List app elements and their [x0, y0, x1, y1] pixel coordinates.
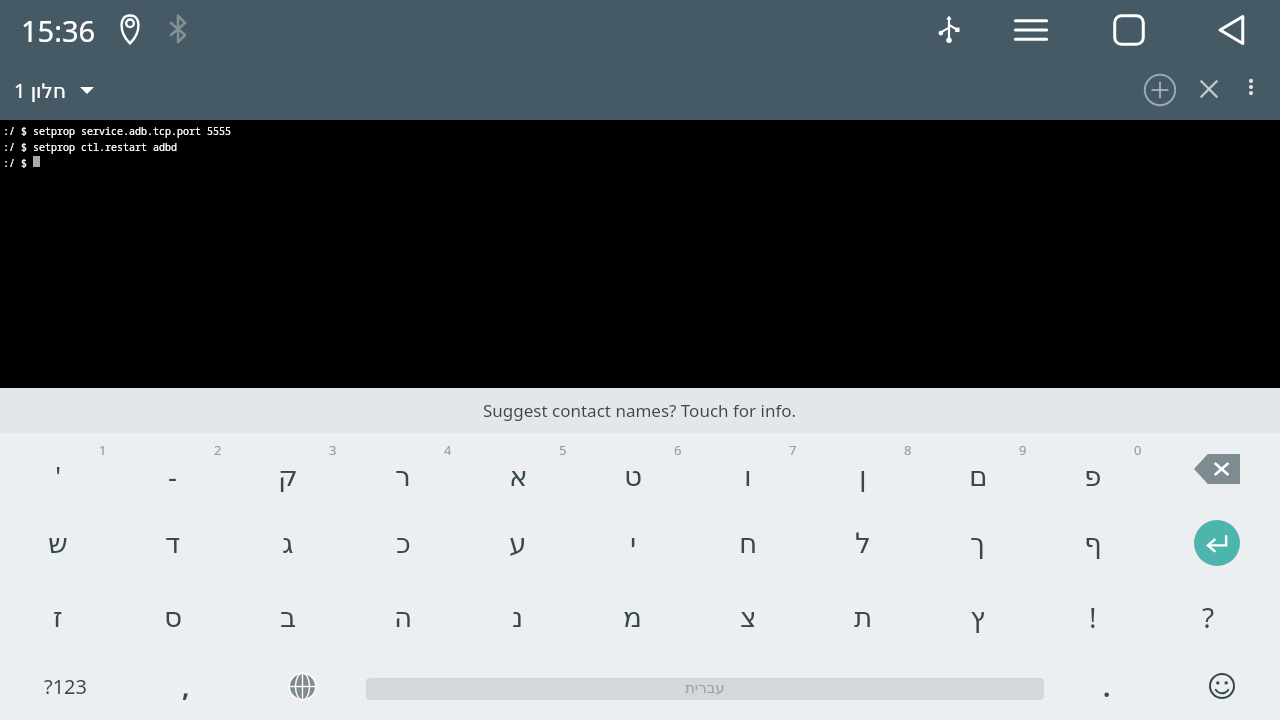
- staticText: ו: [744, 460, 752, 493]
- staticText: ף: [1084, 527, 1102, 560]
- button[interactable]: Home: [1108, 9, 1150, 51]
- button[interactable]: Recent apps: [1010, 9, 1052, 51]
- staticText: ק: [278, 460, 298, 493]
- button[interactable]: ע: [466, 507, 570, 579]
- staticText: ג: [282, 527, 294, 560]
- button[interactable]: Backspace: [1165, 433, 1269, 505]
- staticText: ל: [855, 527, 871, 560]
- staticText: 15:36: [21, 11, 96, 50]
- button[interactable]: ט: [581, 437, 685, 509]
- button[interactable]: פ: [1041, 437, 1145, 509]
- button[interactable]: Enter: [1165, 507, 1269, 579]
- staticText: :/ $: [3, 156, 33, 170]
- staticText: צ: [740, 601, 757, 634]
- staticText: !: [1089, 598, 1097, 636]
- button[interactable]: ': [6, 437, 110, 509]
- staticText: 1: [99, 441, 107, 459]
- button[interactable]: א: [466, 437, 570, 509]
- button[interactable]: Back: [1210, 9, 1252, 51]
- staticText: חלון 1: [14, 77, 66, 104]
- staticText: ': [55, 457, 62, 495]
- staticText: 4: [444, 441, 452, 459]
- button[interactable]: חלון 1: [14, 60, 398, 120]
- staticText: ת: [854, 601, 873, 634]
- staticText: ע: [509, 527, 527, 560]
- button[interactable]: .: [1055, 655, 1159, 717]
- staticText: :/ $ setprop ctl.restart adbd: [3, 140, 177, 154]
- button[interactable]: ז: [6, 581, 110, 653]
- staticText: ר: [395, 460, 411, 493]
- button[interactable]: ך: [926, 507, 1030, 579]
- staticText: ב: [280, 601, 297, 634]
- button[interactable]: ץ: [926, 581, 1030, 653]
- button[interactable]: ל: [811, 507, 915, 579]
- button[interactable]: מ: [581, 581, 685, 653]
- staticText: :/ $ setprop service.adb.tcp.port 5555: [3, 124, 231, 138]
- button[interactable]: !: [1041, 581, 1145, 653]
- staticText: 9: [1019, 441, 1027, 459]
- button[interactable]: כ: [351, 507, 455, 579]
- staticText: -: [168, 457, 178, 495]
- staticText: ?: [1202, 598, 1215, 636]
- button[interactable]: Emoji: [1170, 655, 1274, 717]
- button[interactable]: ס: [121, 581, 225, 653]
- staticText: 3: [329, 441, 337, 459]
- button[interactable]: New window: [1140, 70, 1180, 110]
- button[interactable]: ג: [236, 507, 340, 579]
- button[interactable]: -: [121, 437, 225, 509]
- staticText: 7: [789, 441, 797, 459]
- button[interactable]: ,: [134, 655, 238, 717]
- button[interactable]: ר: [351, 437, 455, 509]
- other: USB connected: [932, 12, 966, 46]
- button[interactable]: Close window: [1190, 70, 1228, 108]
- staticText: ,: [182, 669, 190, 704]
- button[interactable]: י: [581, 507, 685, 579]
- staticText: ך: [970, 527, 986, 560]
- button[interactable]: עברית: [366, 678, 1044, 700]
- button[interactable]: ה: [351, 581, 455, 653]
- staticText: ץ: [970, 601, 986, 634]
- button[interactable]: Change language: [250, 655, 354, 717]
- staticText: ה: [394, 601, 413, 634]
- staticText: 8: [904, 441, 912, 459]
- staticText: א: [509, 460, 528, 493]
- button[interactable]: ח: [696, 507, 800, 579]
- button[interactable]: Suggest contact names? Touch for info.: [0, 388, 1280, 433]
- staticText: פ: [1084, 460, 1102, 493]
- button[interactable]: ם: [926, 437, 1030, 509]
- staticText: ד: [165, 527, 181, 560]
- staticText: ח: [739, 527, 758, 560]
- staticText: נ: [512, 601, 524, 634]
- button[interactable]: ק: [236, 437, 340, 509]
- staticText: 0: [1134, 441, 1142, 459]
- staticText: ס: [164, 601, 183, 634]
- button[interactable]: ב: [236, 581, 340, 653]
- staticText: י: [630, 527, 637, 560]
- staticText: ז: [53, 601, 63, 634]
- staticText: 5: [559, 441, 567, 459]
- staticText: ן: [859, 460, 867, 493]
- staticText: ם: [969, 460, 988, 493]
- staticText: 6: [674, 441, 682, 459]
- button[interactable]: ?: [1156, 581, 1260, 653]
- button[interactable]: ת: [811, 581, 915, 653]
- staticText: .: [1103, 669, 1111, 704]
- staticText: עברית: [685, 679, 725, 696]
- button[interactable]: ו: [696, 437, 800, 509]
- staticText: כ: [396, 527, 411, 560]
- staticText: 2: [214, 441, 222, 459]
- staticText: מ: [623, 601, 643, 634]
- staticText: ש: [48, 527, 68, 560]
- button[interactable]: More options: [1234, 70, 1268, 104]
- staticText: Suggest contact names? Touch for info.: [483, 399, 797, 422]
- staticText: ?123: [44, 673, 87, 700]
- staticText: ט: [624, 460, 643, 493]
- button[interactable]: ף: [1041, 507, 1145, 579]
- button[interactable]: ן: [811, 437, 915, 509]
- button[interactable]: נ: [466, 581, 570, 653]
- button[interactable]: ?123: [10, 655, 120, 717]
- button[interactable]: צ: [696, 581, 800, 653]
- button[interactable]: ש: [6, 507, 110, 579]
- button[interactable]: ד: [121, 507, 225, 579]
